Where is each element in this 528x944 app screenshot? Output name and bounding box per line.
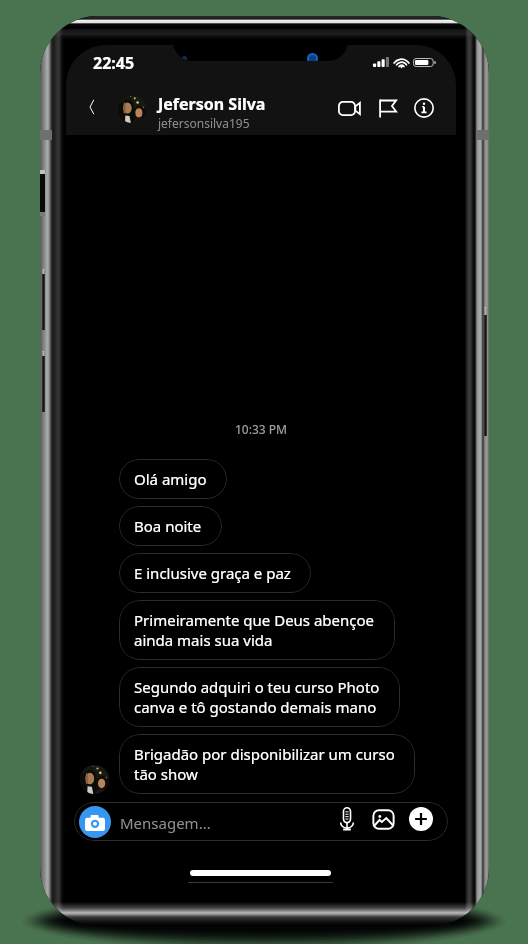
button[interactable]: Olá amigo (119, 459, 227, 499)
staticText: Mensagem... (120, 813, 211, 833)
staticText: jefersonsilva195 (158, 115, 250, 131)
staticText: 22:45 (93, 52, 135, 74)
button[interactable]: Segundo adquiri o teu curso Photo canva … (119, 667, 400, 727)
staticText: E inclusive graça e paz (134, 563, 291, 583)
staticText: Brigadão por disponibilizar um curso tão… (134, 744, 395, 784)
staticText: 10:33 PM (66, 421, 456, 437)
button[interactable]: Voice message (332, 804, 362, 834)
button[interactable]: More options (406, 804, 436, 834)
staticText: Primeiramente que Deus abençoe ainda mai… (134, 610, 375, 650)
staticText: Olá amigo (134, 469, 207, 489)
staticText: Jeferson Silva (158, 93, 266, 115)
staticText: Boa noite (134, 516, 202, 536)
button[interactable]: Info (405, 89, 443, 127)
button[interactable]: Report (369, 89, 407, 127)
button[interactable]: Gallery (368, 804, 398, 834)
button[interactable]: Back (72, 87, 111, 126)
button[interactable] (74, 802, 448, 841)
staticText: Segundo adquiri o teu curso Photo canva … (134, 677, 380, 717)
button[interactable]: Brigadão por disponibilizar um curso tão… (119, 734, 415, 794)
button[interactable]: Camera (79, 806, 111, 838)
button[interactable]: Video call (330, 89, 368, 127)
button[interactable]: E inclusive graça e paz (119, 553, 311, 593)
button[interactable]: Primeiramente que Deus abençoe ainda mai… (119, 600, 395, 660)
button[interactable]: Boa noite (119, 506, 222, 546)
